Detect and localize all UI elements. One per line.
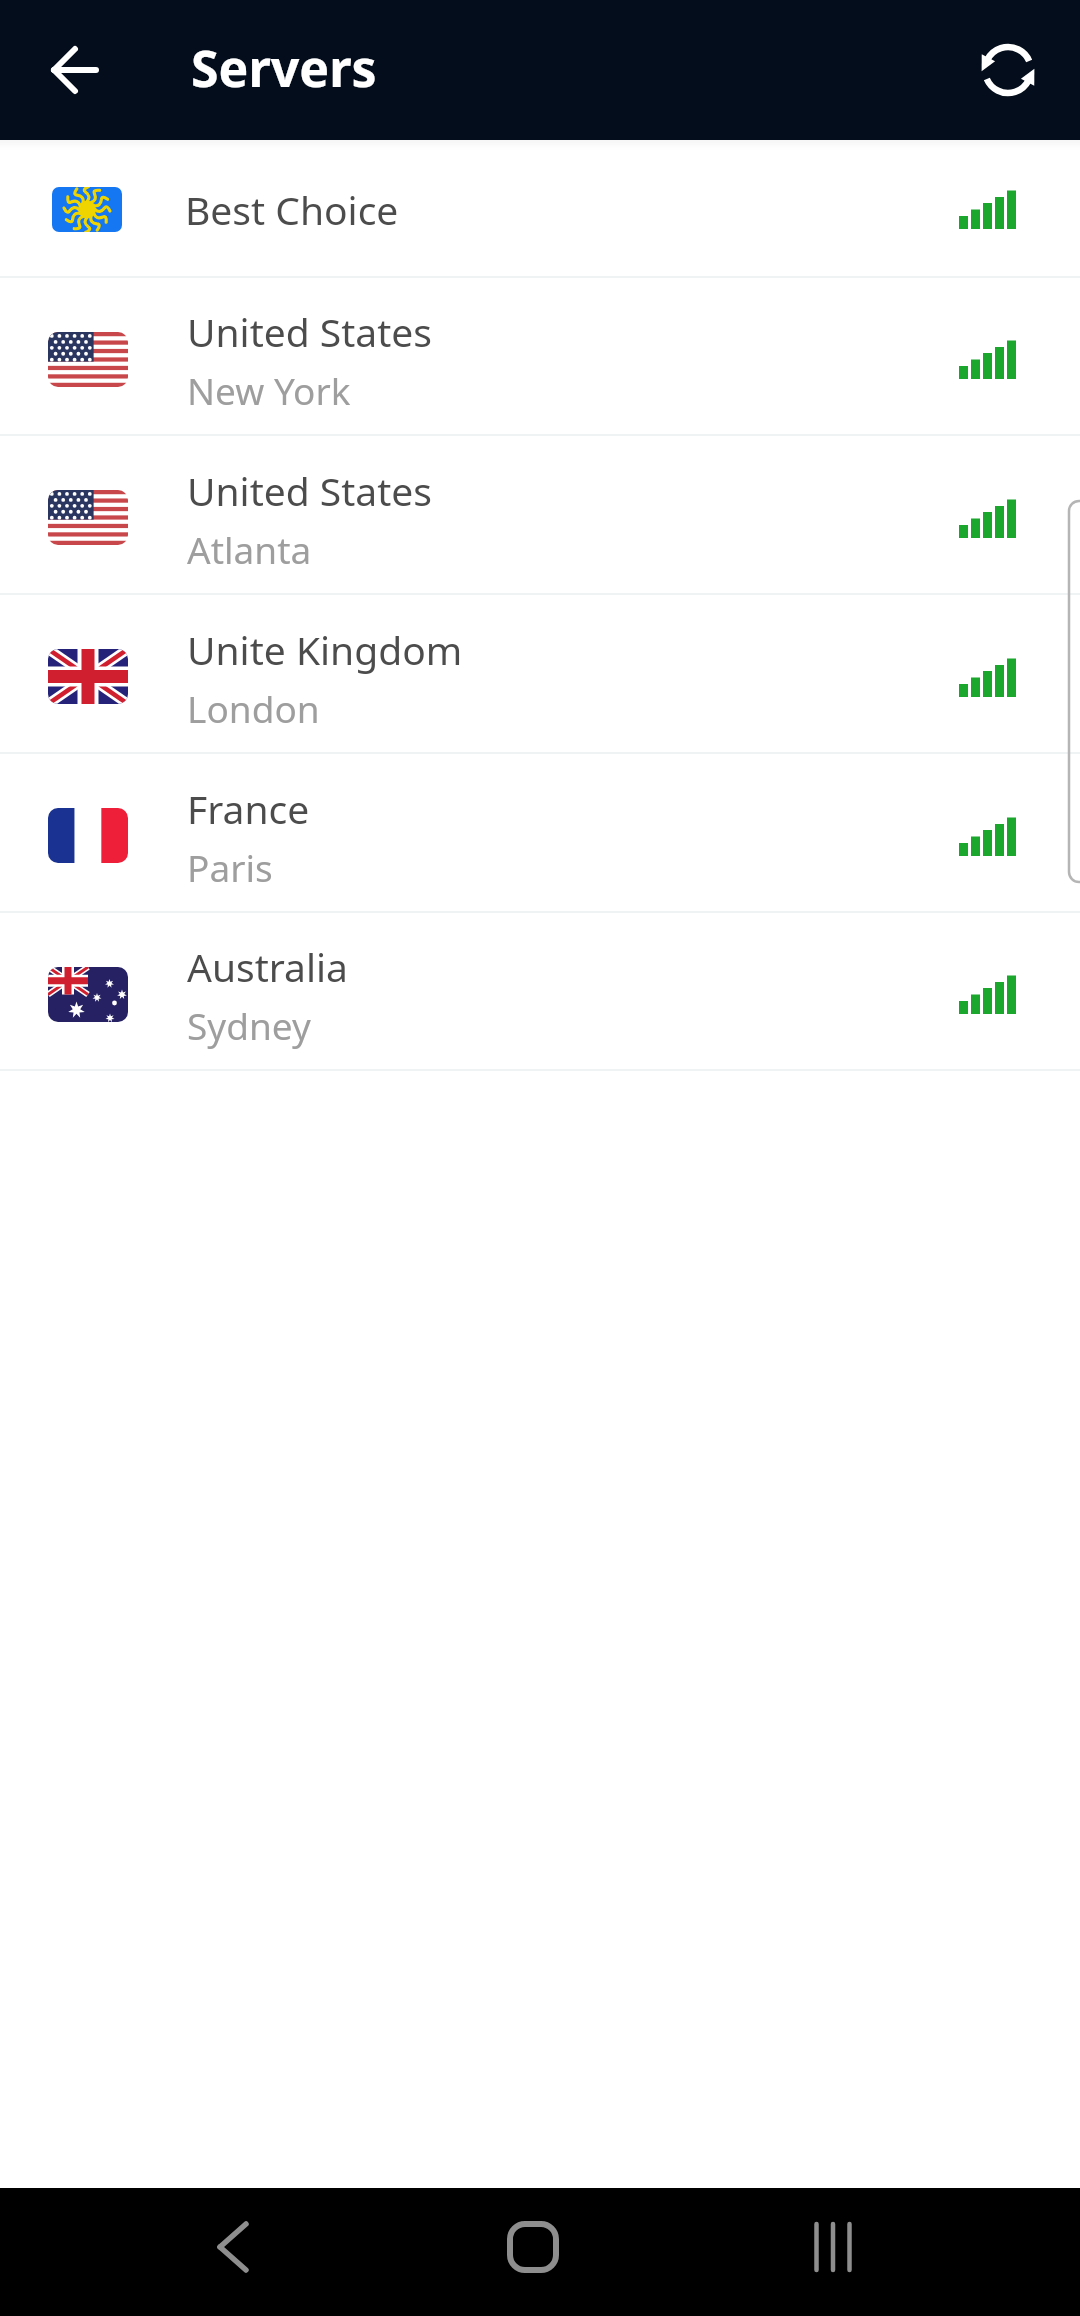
staticText: London <box>187 683 320 733</box>
button[interactable]: France <box>0 754 1080 911</box>
staticText: Unite Kingdom <box>187 623 463 676</box>
staticText: Atlanta <box>187 524 312 574</box>
button[interactable]: Australia <box>0 913 1080 1069</box>
button[interactable] <box>160 2188 305 2316</box>
staticText: New York <box>187 365 351 415</box>
button[interactable] <box>460 2188 605 2316</box>
staticText: Servers <box>191 34 377 102</box>
button[interactable]: Unite Kingdom <box>0 595 1080 752</box>
staticText: Sydney <box>187 1000 311 1050</box>
staticText: Best Choice <box>185 183 399 236</box>
button[interactable] <box>760 2188 905 2316</box>
staticText: United States <box>187 305 432 358</box>
button[interactable]: United States <box>0 436 1080 593</box>
staticText: France <box>187 782 310 835</box>
staticText: United States <box>187 464 432 517</box>
button[interactable]: United States <box>0 278 1080 434</box>
button[interactable] <box>955 14 1060 126</box>
staticText: Australia <box>187 940 348 993</box>
button[interactable]: Best Choice <box>0 140 1080 276</box>
staticText: Paris <box>187 842 273 892</box>
button[interactable] <box>0 0 150 140</box>
